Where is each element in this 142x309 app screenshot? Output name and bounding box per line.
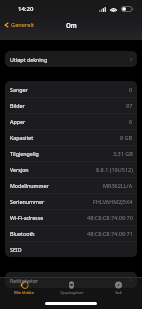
staticText: Bluetooth bbox=[10, 230, 35, 237]
staticText: Kapasitet bbox=[10, 134, 34, 141]
staticText: FHLV6HM2J5X4 bbox=[93, 198, 133, 205]
button[interactable]: Generelt bbox=[4, 21, 35, 29]
staticText: 0 bbox=[129, 86, 133, 93]
staticText: Modellnummer bbox=[10, 182, 49, 189]
staticText: Tilgjengelig bbox=[10, 150, 39, 157]
staticText: 97 bbox=[126, 102, 133, 109]
staticText: Min klokke bbox=[14, 290, 34, 295]
staticText: Oppdagelser bbox=[60, 290, 84, 295]
staticText: 14:20 bbox=[18, 5, 34, 13]
staticText: 8.8.1 (19U512) bbox=[96, 166, 133, 173]
staticText: 3,31 GB bbox=[113, 150, 133, 157]
button[interactable]: Søk bbox=[95, 277, 142, 309]
staticText: Rettigheter bbox=[10, 277, 39, 284]
staticText: MR362LL/A bbox=[103, 182, 133, 189]
staticText: Versjon bbox=[10, 166, 29, 173]
button[interactable]: Min klokke bbox=[0, 277, 48, 309]
staticText: Bilder bbox=[10, 102, 25, 109]
staticText: Om bbox=[66, 21, 77, 29]
staticText: SEID bbox=[10, 246, 22, 253]
staticText: Serienummer bbox=[10, 198, 45, 205]
staticText: Generelt bbox=[11, 21, 35, 29]
button[interactable]: Utløpt dekning bbox=[5, 51, 137, 67]
staticText: Sanger bbox=[10, 86, 28, 93]
staticText: Søk bbox=[115, 290, 122, 295]
staticText: 6 bbox=[129, 118, 133, 125]
button[interactable]: Oppdagelser bbox=[48, 277, 95, 309]
staticText: 48:C8:C8:74:09:70 bbox=[87, 214, 133, 221]
staticText: 48:C8:C8:74:09:71 bbox=[87, 230, 133, 237]
staticText: Utløpt dekning bbox=[10, 56, 48, 63]
staticText: Wi-Fi-adresse bbox=[10, 214, 44, 221]
staticText: 8 GB bbox=[120, 134, 133, 141]
button[interactable]: Rettigheter bbox=[5, 272, 137, 288]
staticText: Apper bbox=[10, 118, 26, 125]
